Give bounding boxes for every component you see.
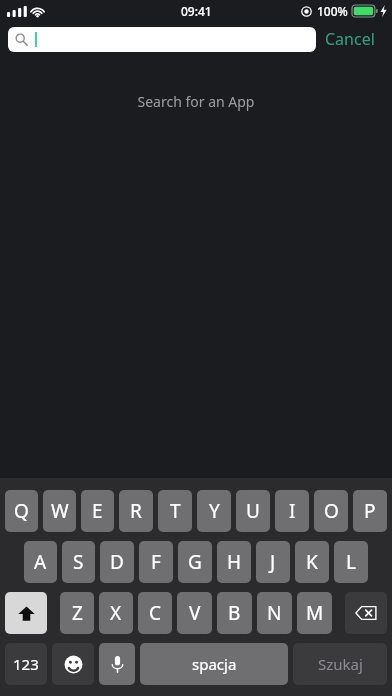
staticText: O <box>324 498 339 524</box>
staticText: N <box>267 600 282 626</box>
button[interactable]: Y <box>197 490 231 532</box>
staticText: C <box>149 600 162 626</box>
button[interactable]: Z <box>60 592 94 634</box>
staticText: W <box>51 498 69 524</box>
button[interactable]: W <box>43 490 76 532</box>
button[interactable]: F <box>139 541 173 583</box>
button[interactable]: C <box>138 592 172 634</box>
staticText: U <box>246 498 260 524</box>
staticText: Szukaj <box>318 654 363 674</box>
button[interactable]: A <box>24 541 57 583</box>
button[interactable]: L <box>334 541 368 583</box>
staticText: D <box>110 549 124 575</box>
staticText: L <box>346 549 356 575</box>
button[interactable]: E <box>81 490 114 532</box>
staticText: Cancel <box>325 28 375 50</box>
button[interactable]: T <box>158 490 192 532</box>
staticText: A <box>34 549 47 575</box>
button[interactable]: N <box>257 592 292 634</box>
staticText: V <box>189 600 201 626</box>
staticText: F <box>151 549 161 575</box>
staticText: E <box>92 498 103 524</box>
staticText: S <box>73 549 84 575</box>
button[interactable]: M <box>297 592 332 634</box>
staticText: P <box>364 498 376 524</box>
button[interactable]: V <box>177 592 212 634</box>
staticText: K <box>306 549 318 575</box>
staticText: Y <box>209 498 220 524</box>
staticText: X <box>110 600 122 626</box>
staticText: 123 <box>13 654 39 674</box>
button[interactable]: Q <box>5 490 38 532</box>
button[interactable]: P <box>353 490 387 532</box>
staticText: T <box>170 498 181 524</box>
staticText: M <box>306 600 324 626</box>
button[interactable]: Emoji <box>52 643 94 685</box>
staticText: 09:41 <box>181 3 212 19</box>
staticText: Z <box>72 600 83 626</box>
staticText: H <box>227 549 242 575</box>
button[interactable]: Cancel <box>316 23 384 55</box>
button[interactable]: O <box>314 490 348 532</box>
button[interactable]: 123 <box>5 643 47 685</box>
button[interactable] <box>8 27 316 52</box>
button[interactable]: X <box>99 592 133 634</box>
button[interactable]: S <box>62 541 95 583</box>
button[interactable]: H <box>217 541 251 583</box>
button[interactable]: K <box>295 541 329 583</box>
button[interactable]: Szukaj <box>293 643 387 685</box>
staticText: Q <box>14 498 29 524</box>
staticText: I <box>289 498 296 524</box>
button[interactable]: Backspace <box>345 592 387 634</box>
button[interactable]: I <box>275 490 309 532</box>
button[interactable]: J <box>256 541 290 583</box>
staticText: J <box>270 549 276 575</box>
button[interactable]: spacja <box>140 643 288 685</box>
staticText: G <box>188 549 202 575</box>
button[interactable]: Shift <box>5 592 47 634</box>
staticText: spacja <box>192 654 237 674</box>
button[interactable]: R <box>119 490 153 532</box>
staticText: Search for an App <box>0 92 392 111</box>
button[interactable]: B <box>217 592 252 634</box>
button[interactable]: Voice input <box>99 643 135 685</box>
button[interactable]: G <box>178 541 212 583</box>
button[interactable]: D <box>100 541 134 583</box>
staticText: 100% <box>317 3 348 19</box>
staticText: B <box>228 600 241 626</box>
button[interactable]: U <box>236 490 270 532</box>
staticText: R <box>130 498 142 524</box>
